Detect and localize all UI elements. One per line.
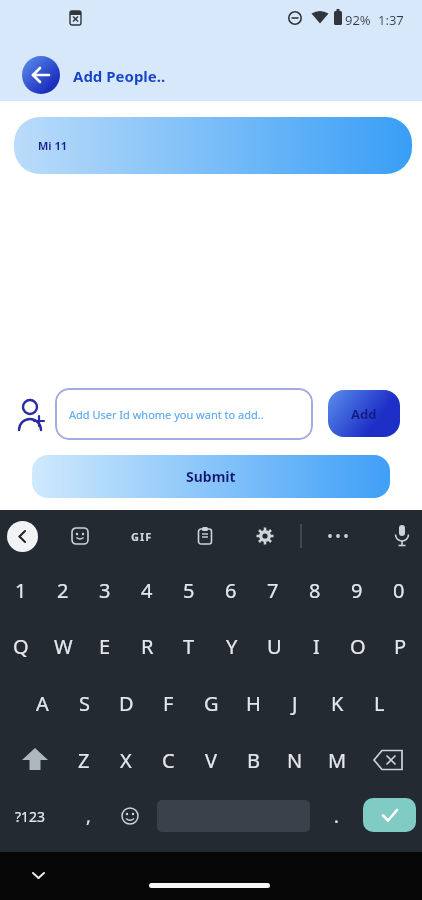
staticText: 92% [345,11,371,29]
staticText: T [183,633,195,660]
button[interactable]: K [316,677,358,729]
staticText: Add User Id whome you want to add.. [69,407,264,422]
staticText: G [204,690,219,717]
button[interactable]: W [42,620,84,672]
staticText: F [163,690,174,717]
button[interactable]: C [147,734,189,786]
button[interactable]: L [358,677,400,729]
staticText: A [36,690,49,717]
staticText: V [205,747,217,774]
staticText: 0 [393,577,405,604]
staticText: U [267,633,282,660]
button[interactable]: D [105,677,147,729]
staticText: M [328,747,347,774]
button[interactable]: J [274,677,316,729]
button[interactable] [30,869,47,881]
staticText: S [79,690,90,717]
staticText: W [54,633,73,660]
staticText: B [247,747,260,774]
staticText: H [246,690,261,717]
button[interactable]: 3 [84,564,126,616]
button[interactable]: , [73,794,103,838]
button[interactable] [149,883,270,888]
staticText: 1:37 [378,11,404,29]
staticText: P [394,633,407,660]
button[interactable]: M [316,734,358,786]
button[interactable]: ?123 [4,794,56,838]
button[interactable]: F [147,677,189,729]
button[interactable]: I [295,620,337,672]
button[interactable] [372,748,406,772]
button[interactable]: . [321,794,351,838]
staticText: D [119,690,134,717]
button[interactable]: G [190,677,232,729]
button[interactable]: 5 [168,564,210,616]
button[interactable]: E [84,620,126,672]
staticText: , [86,804,91,829]
button[interactable]: Z [63,734,105,786]
button[interactable]: X [105,734,147,786]
button[interactable]: 9 [336,564,378,616]
button[interactable]: H [232,677,274,729]
staticText: Add [351,405,377,423]
staticText: 3 [99,577,111,604]
button[interactable]: Add [328,390,400,437]
button[interactable]: Mi 11 [14,117,412,174]
staticText: J [292,690,298,717]
staticText: Q [13,633,29,660]
button[interactable]: V [190,734,232,786]
button[interactable]: 4 [126,564,168,616]
button[interactable]: 2 [42,564,84,616]
staticText: 2 [57,577,69,604]
button[interactable]: 8 [294,564,336,616]
staticText: 8 [309,577,321,604]
button[interactable]: B [232,734,274,786]
button[interactable]: O [337,620,379,672]
staticText: E [99,633,111,660]
button[interactable]: U [253,620,295,672]
staticText: 4 [141,577,153,604]
button[interactable]: P [379,620,421,672]
button[interactable]: 0 [378,564,420,616]
button[interactable]: T [168,620,210,672]
staticText: Submit [186,467,236,486]
staticText: C [162,747,175,774]
staticText: 7 [267,577,279,604]
button[interactable] [326,530,350,542]
button[interactable]: Q [0,620,42,672]
button[interactable]: 7 [252,564,294,616]
button[interactable]: Y [211,620,253,672]
button[interactable] [256,527,274,545]
button[interactable] [22,56,60,94]
staticText: 9 [351,577,363,604]
staticText: R [141,633,154,660]
button[interactable]: Submit [32,455,390,498]
button[interactable] [20,746,50,774]
button[interactable] [7,521,38,552]
button[interactable]: N [274,734,316,786]
button[interactable] [363,798,416,832]
button[interactable]: 1 [0,564,42,616]
staticText: 6 [225,577,237,604]
staticText: K [331,690,344,717]
button[interactable]: GIF [126,524,158,548]
staticText: 1 [15,577,27,604]
staticText: 5 [183,577,195,604]
button[interactable]: 6 [210,564,252,616]
staticText: Y [226,633,238,660]
button[interactable]: Add User Id whome you want to add.. [55,388,313,440]
button[interactable] [120,806,140,826]
button[interactable] [394,524,410,548]
staticText: Z [78,747,90,774]
button[interactable] [196,527,214,545]
staticText: N [287,747,303,774]
staticText: O [350,633,366,660]
button[interactable]: R [126,620,168,672]
button[interactable]: A [21,677,63,729]
staticText: . [334,804,339,829]
staticText: X [120,747,132,774]
button[interactable] [71,527,89,545]
button[interactable]: S [63,677,105,729]
staticText: ?123 [15,807,46,826]
